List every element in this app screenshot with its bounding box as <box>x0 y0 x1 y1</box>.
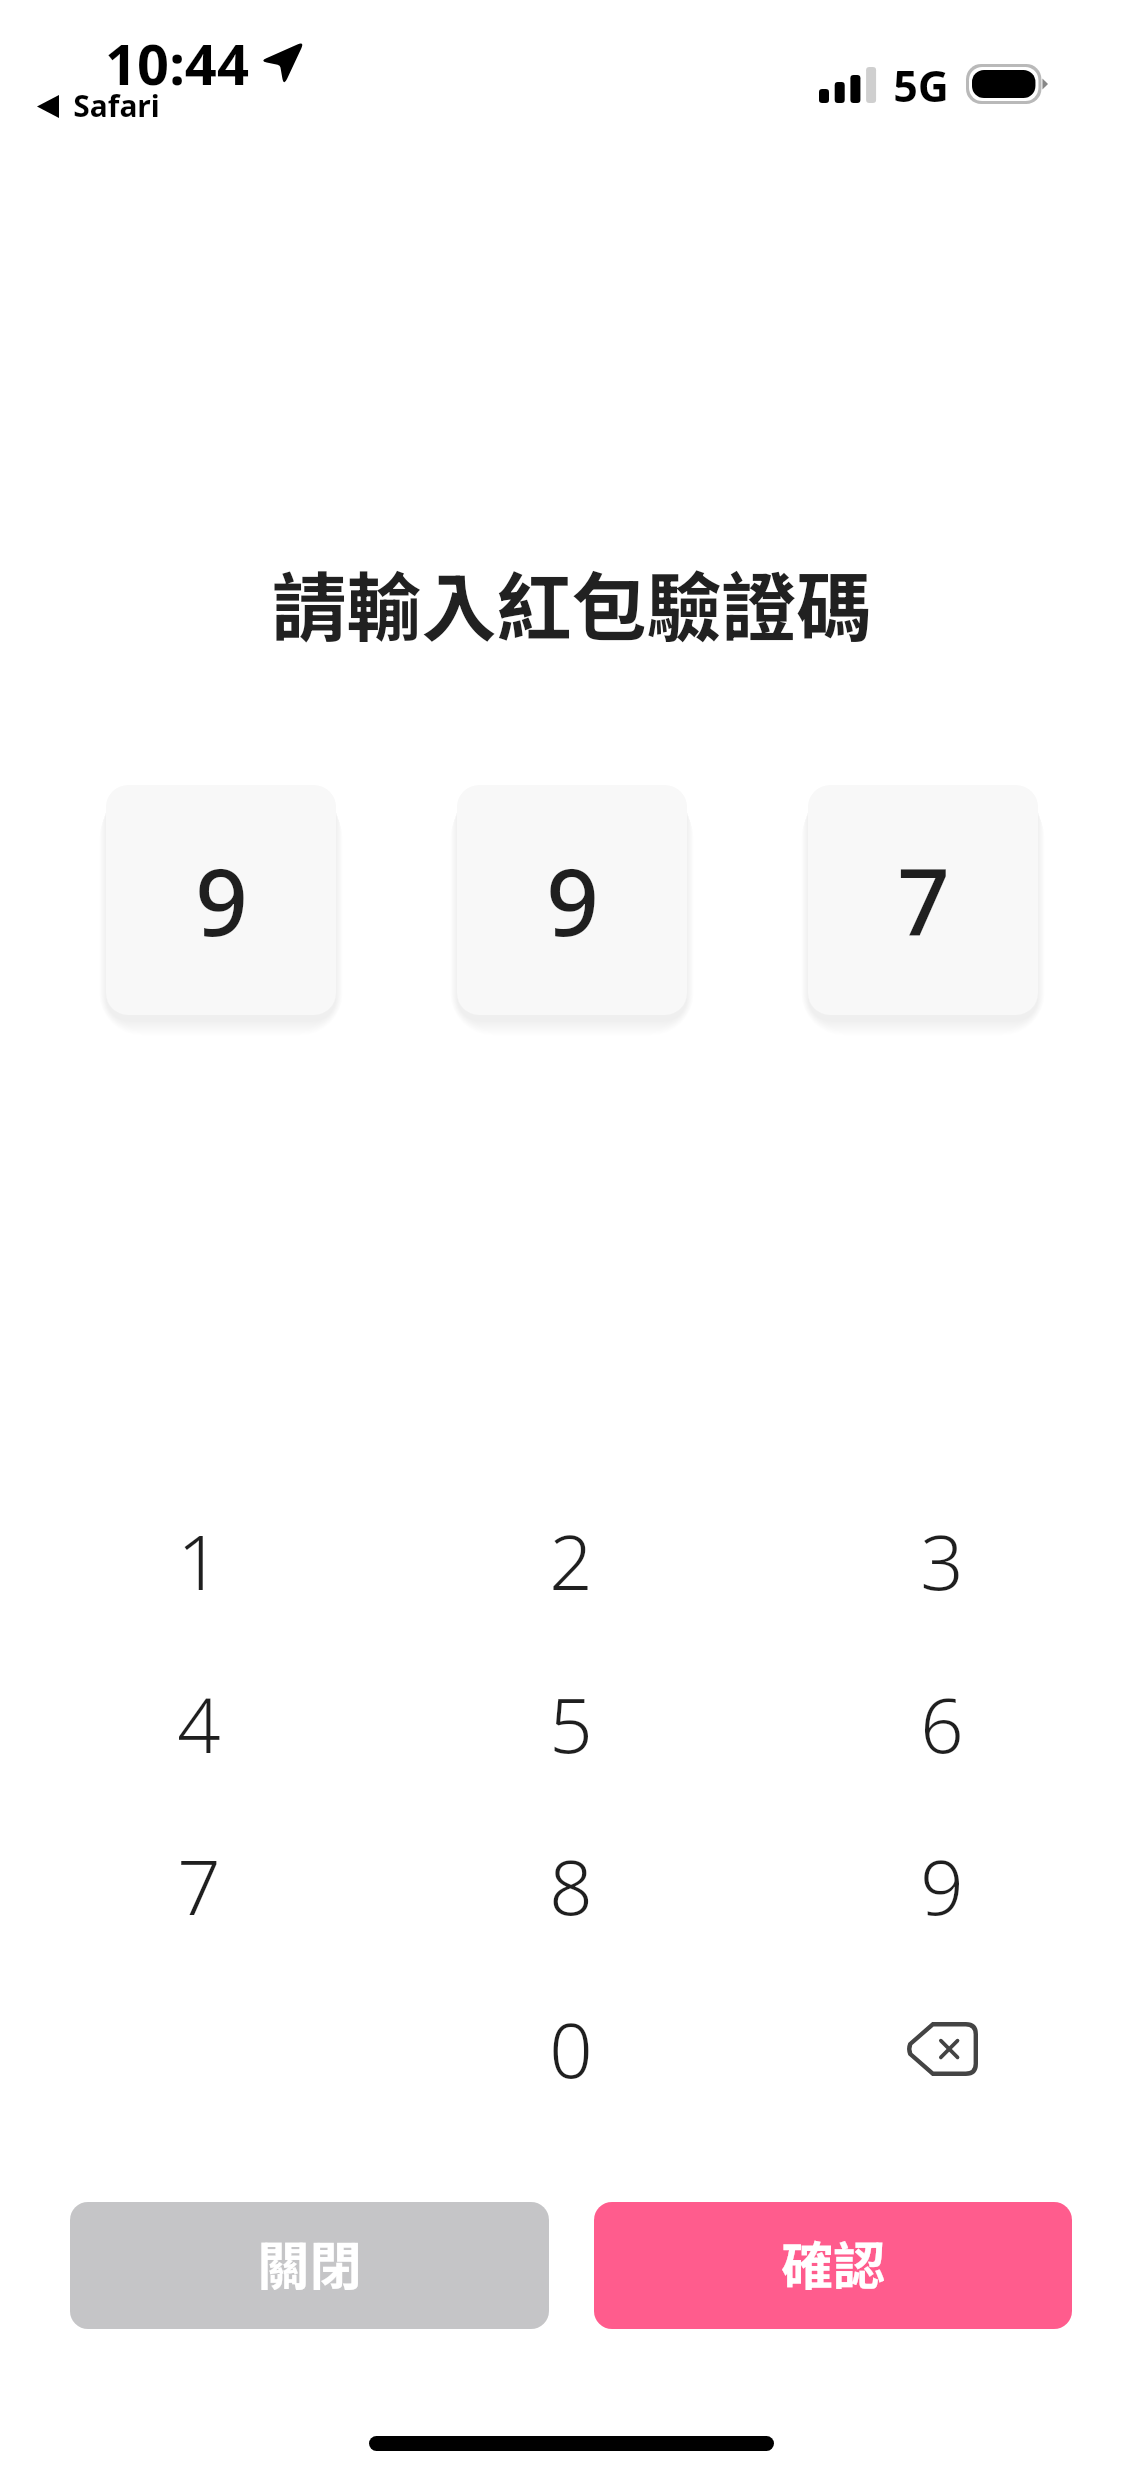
staticText: 關閉 <box>257 2225 362 2300</box>
staticText: 4 <box>177 1672 221 1776</box>
staticText: 2 <box>549 1509 593 1613</box>
staticText: 9 <box>920 1834 964 1938</box>
button[interactable]: 8 <box>451 1811 691 1961</box>
button[interactable]: 3 <box>822 1486 1062 1636</box>
staticText: 1 <box>177 1509 221 1613</box>
staticText: 0 <box>549 1997 593 2101</box>
staticText: 3 <box>920 1509 964 1613</box>
button[interactable]: 7 <box>79 1811 319 1961</box>
staticText: 8 <box>549 1834 593 1938</box>
staticText: 確認 <box>781 2225 886 2300</box>
staticText: 5G <box>893 56 949 115</box>
button[interactable]: 關閉 <box>70 2202 549 2329</box>
staticText: 6 <box>920 1672 964 1776</box>
button[interactable]: 4 <box>79 1649 319 1799</box>
staticText: 9 <box>546 838 599 963</box>
staticText: 請輸入紅包驗證碼 <box>271 548 872 657</box>
button[interactable]: 9 <box>822 1811 1062 1961</box>
button[interactable]: Back to Safari <box>32 85 160 127</box>
button[interactable]: 5 <box>451 1649 691 1799</box>
button[interactable]: 9 <box>106 785 336 1015</box>
button[interactable]: 9 <box>457 785 687 1015</box>
button[interactable]: 1 <box>79 1486 319 1636</box>
staticText: 10:44 <box>105 25 249 101</box>
staticText: Safari <box>73 85 160 126</box>
staticText: 5 <box>549 1672 593 1776</box>
button[interactable]: 0 <box>451 1974 691 2124</box>
button[interactable]: 確認 <box>594 2202 1072 2329</box>
button[interactable]: 2 <box>451 1486 691 1636</box>
staticText: 9 <box>195 838 248 963</box>
button[interactable]: Backspace <box>822 1974 1062 2124</box>
button[interactable]: 6 <box>822 1649 1062 1799</box>
button[interactable]: 7 <box>808 785 1038 1015</box>
staticText: 7 <box>177 1834 221 1938</box>
staticText: 7 <box>897 838 950 963</box>
